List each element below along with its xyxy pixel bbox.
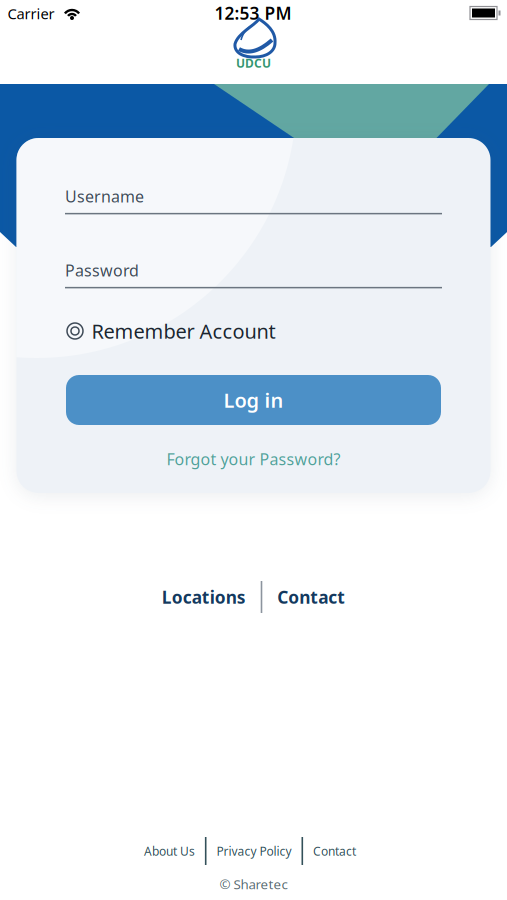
button[interactable]: Contact xyxy=(277,585,345,608)
staticText: UDCU xyxy=(236,55,271,71)
button[interactable]: Password xyxy=(65,260,442,288)
button[interactable]: About Us xyxy=(144,843,195,859)
staticText: Carrier xyxy=(7,4,54,23)
staticText: Forgot your Password? xyxy=(166,448,340,470)
button[interactable]: Contact xyxy=(313,843,356,859)
staticText: Contact xyxy=(313,843,356,859)
staticText: © Sharetec xyxy=(219,875,287,893)
staticText: Username xyxy=(65,186,144,207)
staticText: Locations xyxy=(162,585,246,608)
staticText: Privacy Policy xyxy=(216,843,291,859)
staticText: Log in xyxy=(223,387,283,413)
staticText: Contact xyxy=(277,585,345,608)
button[interactable]: Remember Account xyxy=(66,318,440,344)
button[interactable]: Username xyxy=(65,186,442,214)
button[interactable]: Privacy Policy xyxy=(216,843,291,859)
staticText: 12:53 PM xyxy=(214,1,291,24)
button[interactable]: Log in xyxy=(66,375,441,425)
staticText: About Us xyxy=(144,843,195,859)
button[interactable]: Forgot your Password? xyxy=(166,448,340,470)
staticText: Password xyxy=(65,260,139,281)
staticText: Remember Account xyxy=(91,318,275,344)
button[interactable]: Locations xyxy=(162,585,246,608)
